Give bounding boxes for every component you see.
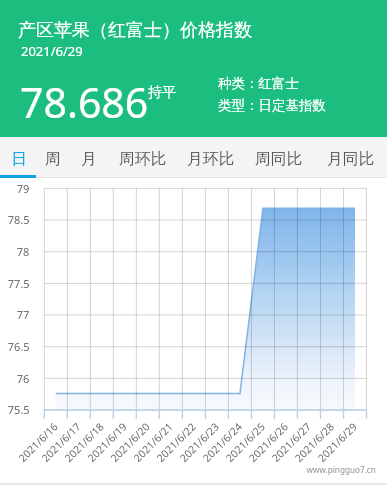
- staticText: 2021/6/29: [21, 42, 83, 60]
- staticText: 78.686: [20, 74, 149, 130]
- staticText: 类型：日定基指数: [218, 97, 326, 114]
- staticText: 周环比: [119, 149, 167, 169]
- button[interactable]: 月: [74, 142, 104, 176]
- button[interactable]: 周: [38, 142, 68, 176]
- staticText: 日: [11, 149, 27, 169]
- staticText: 产区苹果（红富士）价格指数: [18, 19, 252, 42]
- staticText: 持平: [148, 83, 177, 101]
- staticText: 周同比: [255, 149, 303, 169]
- staticText: 月环比: [187, 149, 235, 169]
- button[interactable]: 月同比: [323, 142, 379, 176]
- staticText: 月同比: [327, 149, 375, 169]
- staticText: 月: [81, 149, 97, 169]
- button[interactable]: 周环比: [115, 142, 171, 176]
- button[interactable]: 周同比: [251, 142, 307, 176]
- staticText: 周: [45, 149, 61, 169]
- button[interactable]: 日: [4, 142, 34, 176]
- staticText: 种类：红富士: [218, 75, 299, 92]
- button[interactable]: 月环比: [183, 142, 239, 176]
